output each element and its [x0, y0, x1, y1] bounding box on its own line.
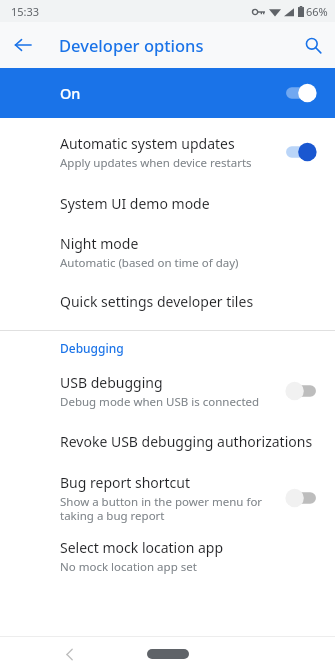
button[interactable]: Toggle: [284, 380, 318, 402]
button[interactable]: Select mock location app: [0, 531, 335, 581]
staticText: No mock location app set: [60, 559, 197, 575]
button[interactable]: System UI demo mode: [0, 180, 335, 226]
button[interactable]: Night mode: [0, 226, 335, 278]
staticText: Debug mode when USB is connected: [60, 394, 260, 410]
staticText: 66%: [306, 4, 328, 19]
button[interactable]: Back: [6, 28, 40, 62]
button[interactable]: Bug report shortcut: [0, 465, 335, 531]
staticText: On: [60, 83, 81, 103]
button[interactable]: Revoke USB debugging authorizations: [0, 417, 335, 465]
staticText: Quick settings developer tiles: [60, 292, 254, 311]
button[interactable]: Toggle: [284, 487, 318, 509]
button[interactable]: Home: [147, 649, 189, 659]
button[interactable]: Automatic system updates: [0, 124, 335, 180]
staticText: Automatic system updates: [60, 134, 235, 153]
staticText: Bug report shortcut: [60, 473, 191, 492]
button[interactable]: Back: [56, 641, 82, 667]
button[interactable]: Search: [296, 28, 330, 62]
staticText: Show a button in the power menu for taki…: [60, 494, 263, 523]
staticText: Apply updates when device restarts: [60, 155, 252, 171]
staticText: Select mock location app: [60, 538, 224, 557]
staticText: Debugging: [60, 340, 124, 356]
staticText: Automatic (based on time of day): [60, 255, 239, 271]
button[interactable]: Quick settings developer tiles: [0, 278, 335, 324]
staticText: USB debugging: [60, 373, 163, 392]
button[interactable]: On: [0, 68, 335, 118]
staticText: System UI demo mode: [60, 194, 210, 213]
staticText: Night mode: [60, 234, 139, 253]
staticText: Developer options: [59, 34, 204, 56]
staticText: 15:33: [11, 4, 40, 19]
button[interactable]: USB debugging: [0, 365, 335, 417]
staticText: Revoke USB debugging authorizations: [60, 432, 313, 451]
button[interactable]: Toggle: [284, 141, 318, 163]
button[interactable]: Toggle: [284, 82, 318, 104]
